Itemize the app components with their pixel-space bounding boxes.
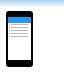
button[interactable]: [8, 35, 31, 38]
button[interactable]: [8, 23, 31, 26]
button[interactable]: [8, 32, 31, 35]
button[interactable]: [8, 26, 31, 29]
button[interactable]: [8, 29, 31, 32]
